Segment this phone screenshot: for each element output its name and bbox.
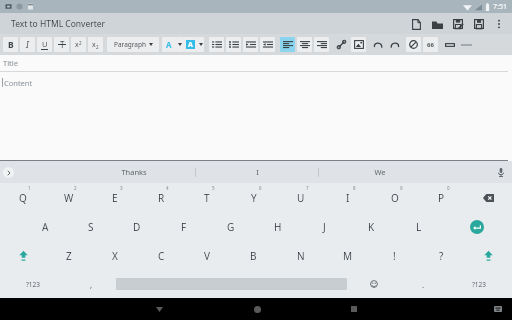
button[interactable]: H — [254, 212, 301, 241]
button[interactable]: Align right — [314, 37, 329, 52]
button[interactable]: Increase indent — [243, 37, 258, 52]
staticText: 7:51 — [493, 2, 507, 12]
button[interactable]: Voice input — [494, 165, 508, 179]
staticText: A — [188, 40, 193, 49]
button[interactable]: Numbered list — [209, 37, 224, 52]
button[interactable]: Block quote — [423, 37, 438, 52]
button[interactable]: Z — [46, 241, 92, 270]
button[interactable]: Underline — [37, 37, 52, 52]
button[interactable]: Undo — [370, 37, 385, 52]
button[interactable]: Code block — [442, 37, 457, 52]
button[interactable]: C — [138, 241, 184, 270]
button[interactable]: Recent apps — [344, 299, 364, 319]
button[interactable]: 1 — [0, 183, 46, 212]
button[interactable]: 6 — [230, 183, 277, 212]
button[interactable]: Enter — [442, 212, 512, 241]
button[interactable]: K — [348, 212, 395, 241]
button[interactable]: Switch keyboard — [490, 301, 506, 317]
button[interactable]: ? — [418, 241, 465, 270]
staticText: Paragraph — [114, 40, 146, 49]
button[interactable]: G — [207, 212, 254, 241]
staticText: E — [112, 191, 118, 205]
staticText: Z — [66, 249, 72, 263]
button[interactable]: Thanks — [72, 161, 195, 183]
button[interactable]: Subscript — [88, 37, 103, 52]
button[interactable]: Insert image — [351, 37, 366, 52]
button[interactable]: I — [196, 161, 318, 183]
staticText: A — [42, 220, 49, 234]
button[interactable]: A — [22, 212, 68, 241]
button[interactable]: Backspace — [465, 183, 512, 212]
button[interactable]: Bulleted list — [226, 37, 241, 52]
button[interactable]: Italic — [20, 37, 35, 52]
staticText: 1 — [28, 185, 31, 191]
button[interactable]: F — [160, 212, 207, 241]
button[interactable]: ?123 — [0, 270, 66, 298]
staticText: ? — [439, 249, 444, 263]
button[interactable]: Save — [472, 17, 486, 31]
staticText: C — [158, 249, 165, 263]
button[interactable]: S — [68, 212, 114, 241]
button[interactable]: Expand — [176, 37, 183, 52]
button[interactable]: Hide keyboard — [149, 299, 169, 319]
button[interactable]: V — [184, 241, 230, 270]
button[interactable]: 9 — [371, 183, 418, 212]
button[interactable]: More suggestions — [1, 165, 15, 179]
button[interactable]: B — [230, 241, 277, 270]
button[interactable]: L — [395, 212, 442, 241]
button[interactable]: Insert link — [334, 37, 349, 52]
button[interactable]: 5 — [184, 183, 230, 212]
button[interactable]: D — [114, 212, 160, 241]
button[interactable]: Clear formatting — [406, 37, 421, 52]
button[interactable]: New document — [409, 17, 423, 31]
button[interactable]: Highlight color — [183, 37, 197, 52]
button[interactable]: 8 — [324, 183, 371, 212]
button[interactable]: Horizontal rule — [459, 37, 474, 52]
button[interactable]: Shift — [465, 241, 512, 270]
button[interactable]: M — [324, 241, 371, 270]
button[interactable]: 7 — [277, 183, 324, 212]
button[interactable]: Shift — [0, 241, 46, 270]
staticText: ?123 — [26, 280, 40, 289]
button[interactable]: J — [301, 212, 348, 241]
staticText: Y — [251, 191, 257, 205]
button[interactable]: Align left — [280, 37, 295, 52]
button[interactable]: Expand — [197, 37, 204, 52]
button[interactable]: 2 — [46, 183, 92, 212]
staticText: T — [204, 191, 210, 205]
button[interactable]: N — [277, 241, 324, 270]
staticText: Q — [19, 191, 27, 205]
staticText: 2 — [96, 44, 99, 50]
staticText: N — [297, 249, 305, 263]
button[interactable]: 0 — [418, 183, 465, 212]
button[interactable]: We — [319, 161, 441, 183]
staticText: D — [133, 220, 141, 234]
button[interactable]: 4 — [138, 183, 184, 212]
staticText: x — [75, 40, 79, 50]
button[interactable]: 3 — [92, 183, 138, 212]
staticText: 8 — [353, 185, 356, 191]
button[interactable]: Text color — [162, 37, 176, 52]
button[interactable]: Content — [0, 75, 512, 161]
button[interactable]: Decrease indent — [260, 37, 275, 52]
button[interactable]: Paragraph — [107, 37, 159, 52]
button[interactable]: Emoji — [347, 270, 401, 298]
staticText: J — [323, 220, 326, 234]
staticText: G — [227, 220, 235, 234]
button[interactable]: Open — [430, 17, 444, 31]
button[interactable]: ?123 — [446, 270, 512, 298]
button[interactable]: ! — [371, 241, 418, 270]
button[interactable]: Strikethrough — [54, 37, 69, 52]
button[interactable]: Save as — [451, 17, 465, 31]
button[interactable]: Title — [0, 55, 512, 72]
button[interactable]: X — [92, 241, 138, 270]
button[interactable]: Home — [247, 299, 267, 319]
button[interactable]: Bold — [3, 37, 18, 52]
button[interactable]: More options — [492, 17, 506, 31]
button[interactable]: Redo — [387, 37, 402, 52]
button[interactable]: Align center — [297, 37, 312, 52]
button[interactable]: Superscript — [71, 37, 86, 52]
